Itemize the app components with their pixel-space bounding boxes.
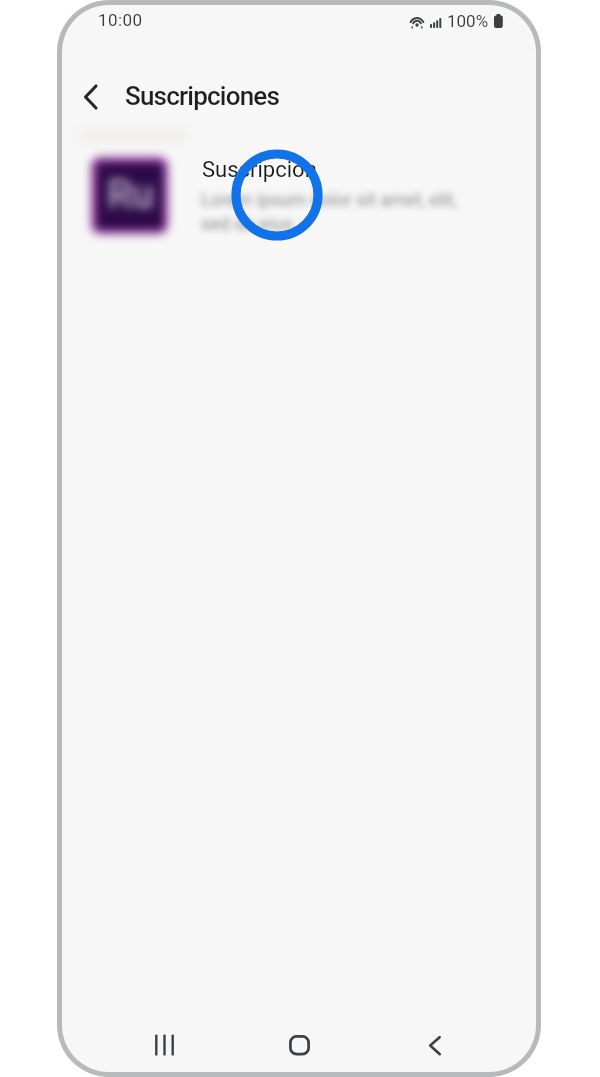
button[interactable]: Ru: [76, 145, 522, 255]
staticText: Ru: [107, 171, 154, 218]
button[interactable]: [405, 1015, 465, 1072]
staticText: Lorem ipsum dolor sit amet, elit,: [201, 189, 458, 210]
staticText: Suscripciones: [125, 81, 280, 111]
button[interactable]: [134, 1015, 194, 1072]
button[interactable]: [269, 1015, 329, 1072]
staticText: Suscripción: [202, 157, 317, 183]
button[interactable]: [70, 77, 110, 117]
staticText: sed do eius.: [201, 213, 298, 234]
staticText: 10:00: [98, 10, 143, 30]
staticText: 100%: [447, 11, 489, 31]
